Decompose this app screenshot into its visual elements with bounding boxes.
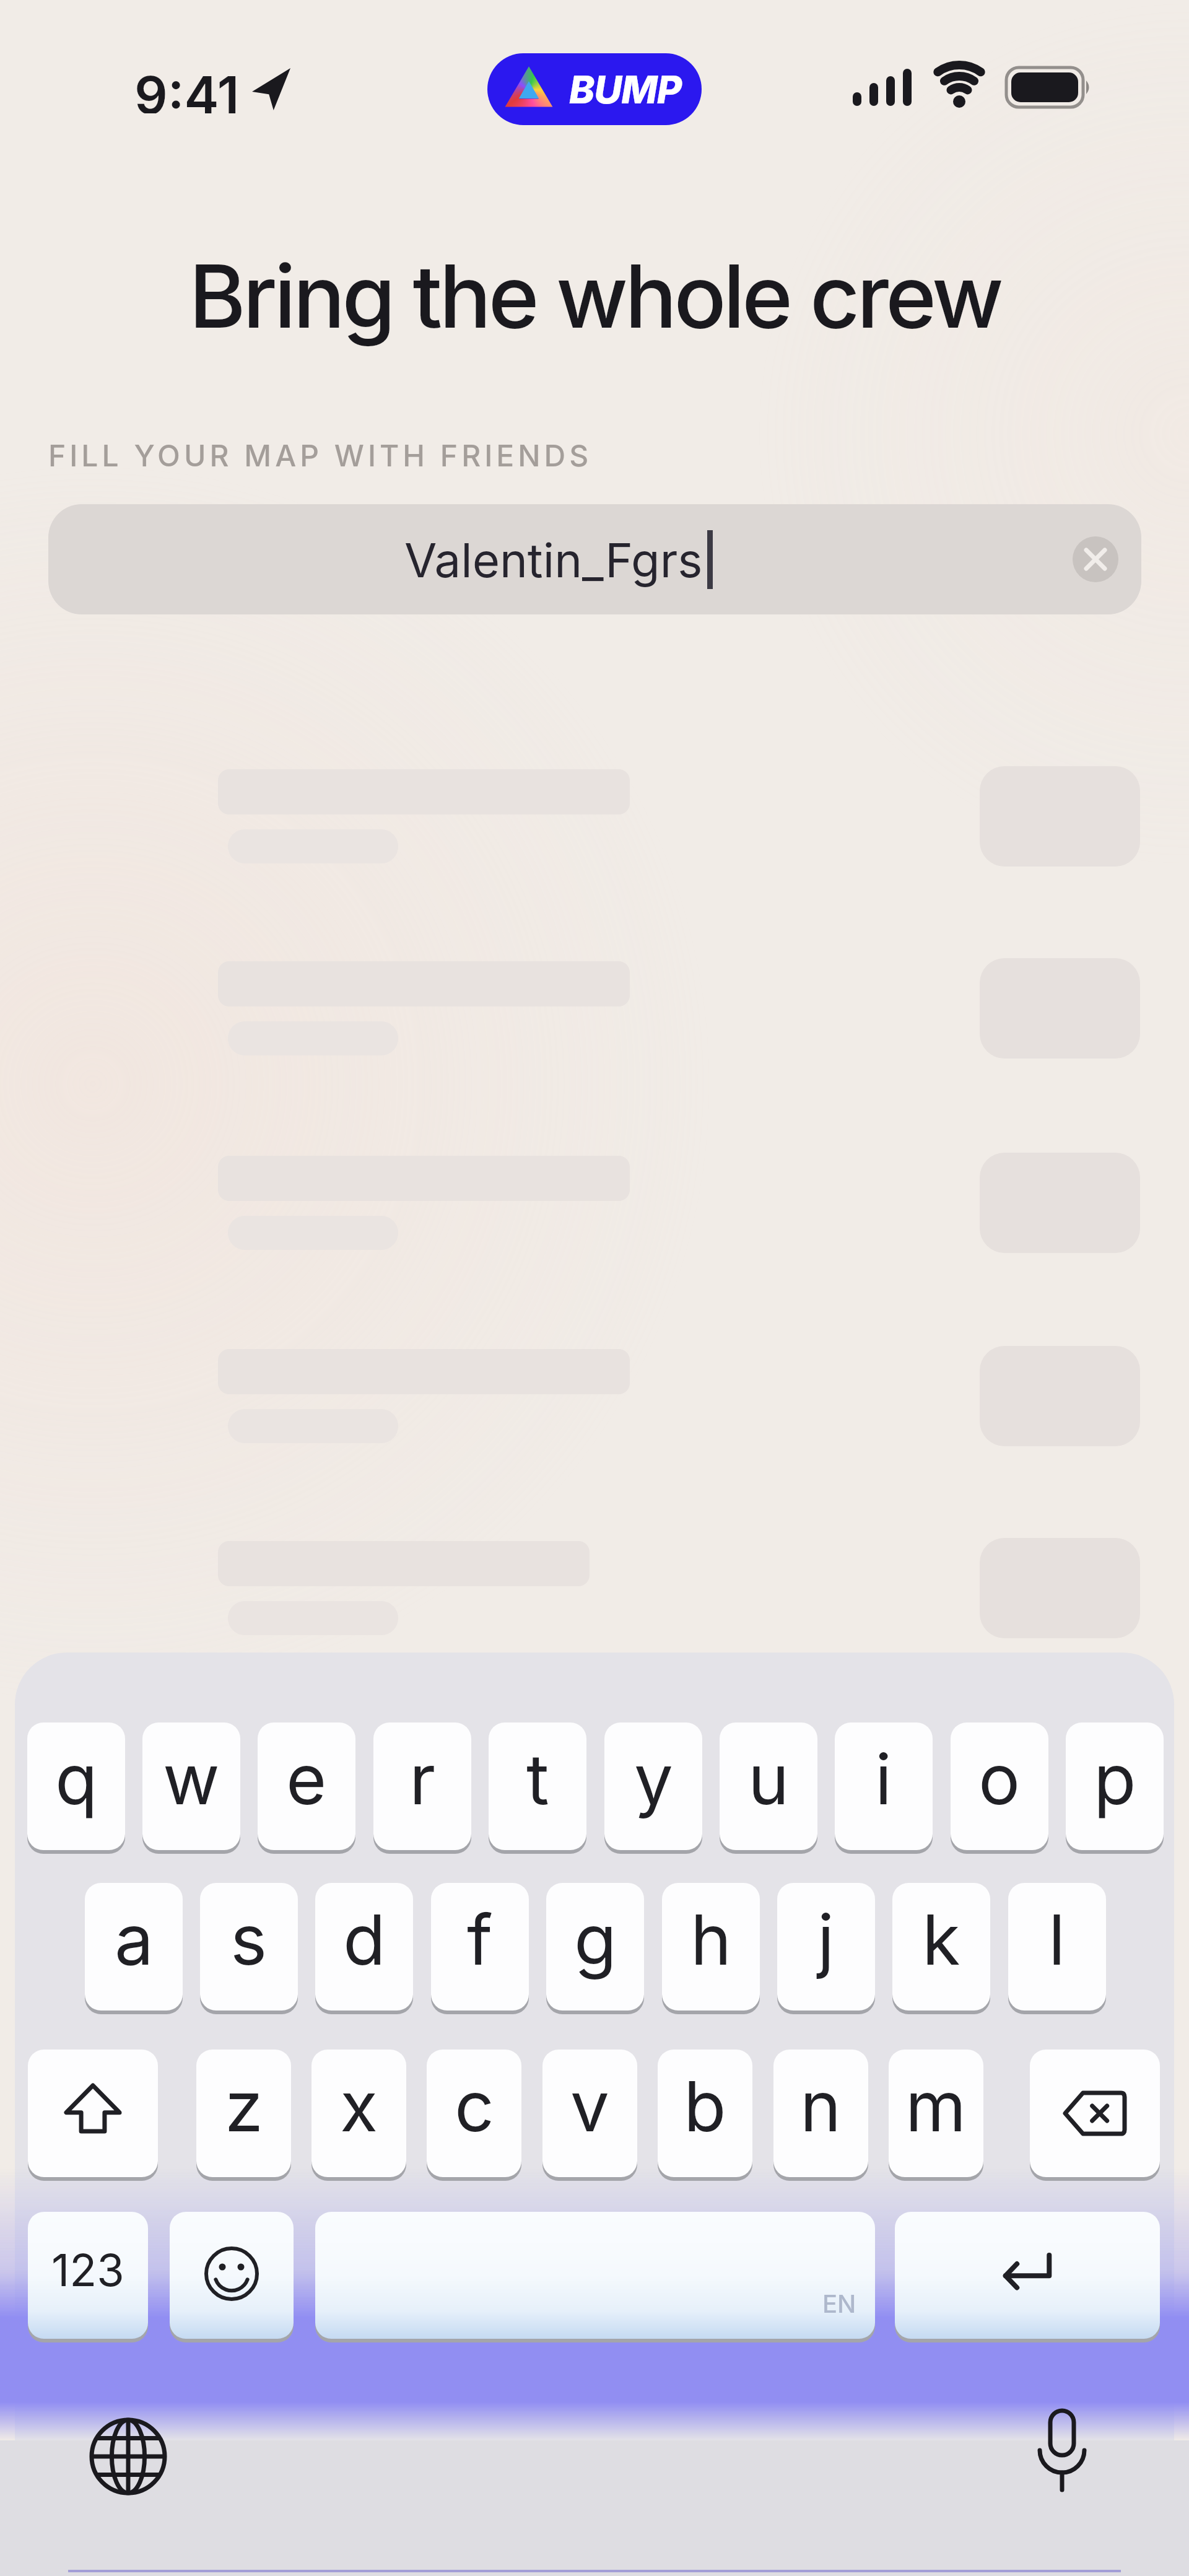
staticText: g [574,1897,617,1981]
staticText: f [467,1897,493,1981]
button[interactable]: o [951,1722,1048,1850]
staticText: k [922,1897,960,1981]
staticText: n [800,2064,842,2148]
staticText: a [115,1897,154,1981]
staticText: e [286,1737,327,1821]
button[interactable]: g [546,1883,644,2011]
button[interactable]: q [27,1722,125,1850]
button[interactable]: s [200,1883,298,2011]
button[interactable] [895,2212,1160,2339]
button[interactable]: u [720,1722,817,1850]
staticText: u [748,1737,790,1821]
staticText: 9:41 [134,64,240,113]
button[interactable]: w [142,1722,240,1850]
button[interactable]: h [662,1883,760,2011]
staticText: 123 [51,2243,124,2297]
button[interactable]: a [85,1883,183,2011]
button[interactable]: x [311,2050,406,2177]
button[interactable] [28,2050,158,2177]
staticText: z [225,2064,263,2148]
staticText: s [230,1897,268,1981]
button[interactable] [1073,536,1118,582]
button[interactable] [1030,2050,1160,2177]
button[interactable]: i [835,1722,933,1850]
button[interactable]: BUMP [487,53,702,125]
staticText: EN [822,2289,856,2318]
staticText: Valentin_Fgrs [404,531,703,588]
staticText: v [570,2064,609,2148]
staticText: t [526,1737,549,1821]
button[interactable]: b [658,2050,752,2177]
button[interactable]: m [889,2050,983,2177]
staticText: o [978,1737,1021,1821]
staticText: c [455,2064,494,2148]
staticText: p [1094,1737,1136,1821]
button[interactable]: f [431,1883,529,2011]
staticText: r [409,1737,436,1821]
staticText: b [684,2064,726,2148]
button[interactable] [88,2417,168,2495]
staticText: d [343,1897,386,1981]
staticText: m [905,2064,967,2148]
staticText: l [1048,1897,1066,1981]
button[interactable]: EN [315,2212,875,2339]
button[interactable]: 123 [28,2212,148,2339]
button[interactable]: r [373,1722,471,1850]
staticText: q [55,1737,98,1821]
button[interactable]: d [315,1883,413,2011]
staticText: i [875,1737,892,1821]
staticText: FILL YOUR MAP WITH FRIENDS [48,437,593,473]
button[interactable]: c [427,2050,521,2177]
button[interactable]: y [604,1722,702,1850]
staticText: BUMP [569,66,682,113]
button[interactable] [1031,2408,1093,2498]
button[interactable]: v [542,2050,637,2177]
staticText: h [690,1897,732,1981]
staticText: x [340,2064,378,2148]
button[interactable]: l [1008,1883,1106,2011]
staticText: j [817,1897,835,1981]
button[interactable]: t [489,1722,586,1850]
staticText: w [163,1737,220,1821]
button[interactable]: n [773,2050,868,2177]
button[interactable]: e [258,1722,355,1850]
button[interactable]: z [196,2050,291,2177]
button[interactable]: p [1066,1722,1164,1850]
button[interactable] [170,2212,294,2339]
button[interactable]: k [892,1883,990,2011]
staticText: y [634,1737,673,1821]
staticText: Bring the whole crew [189,243,1001,348]
button[interactable]: Valentin_Fgrs [48,504,1141,614]
button[interactable]: j [777,1883,875,2011]
